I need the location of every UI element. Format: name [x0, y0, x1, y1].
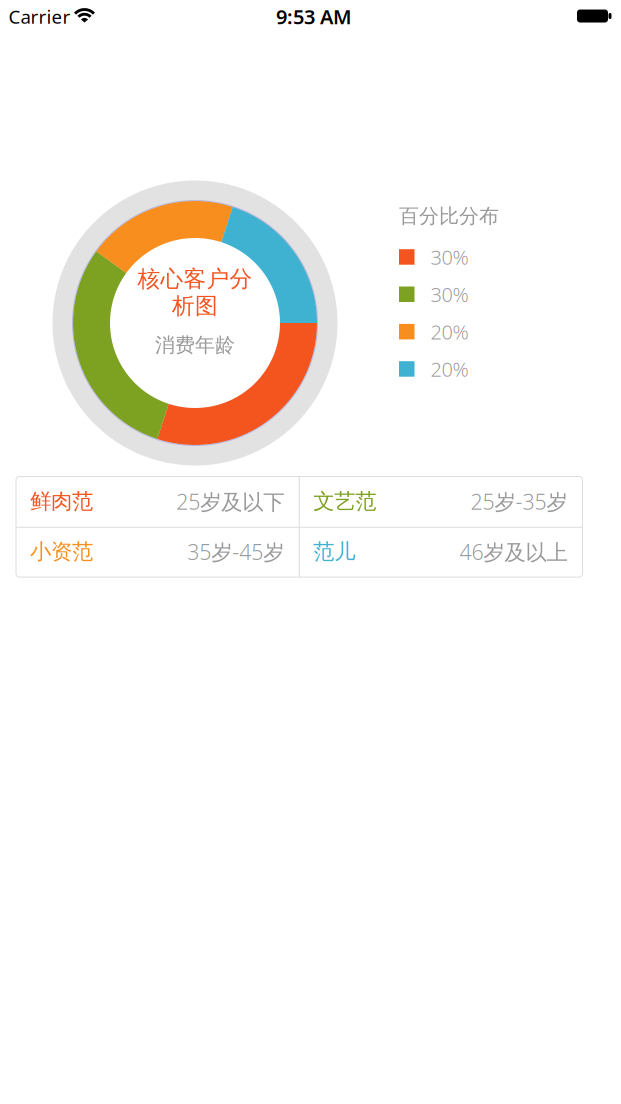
- staticText: 文艺范: [313, 488, 376, 514]
- staticText: 鲜肉范: [30, 488, 93, 514]
- staticText: 30%: [430, 281, 468, 308]
- staticText: 30%: [430, 244, 468, 270]
- staticText: 20%: [430, 356, 468, 382]
- staticText: 25岁-35岁: [470, 487, 567, 516]
- staticText: 9:53 AM: [276, 3, 352, 30]
- staticText: 25岁及以下: [176, 487, 284, 516]
- staticText: 百分比分布: [399, 204, 499, 228]
- staticText: 核心客户分: [137, 265, 252, 293]
- staticText: Carrier: [8, 4, 70, 29]
- staticText: 小资范: [30, 539, 93, 565]
- staticText: 范儿: [313, 539, 355, 565]
- staticText: 消费年龄: [155, 333, 235, 357]
- staticText: 46岁及以上: [459, 538, 567, 566]
- staticText: 35岁-45岁: [187, 538, 284, 566]
- staticText: 20%: [430, 318, 468, 345]
- staticText: 析图: [172, 292, 218, 320]
